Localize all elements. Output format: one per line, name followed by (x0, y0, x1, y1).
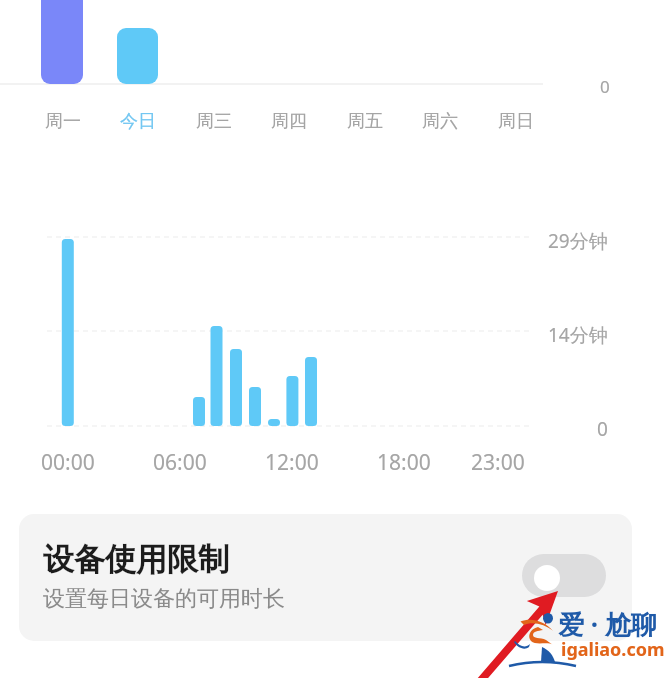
button[interactable]: 周日 (494, 106, 538, 136)
button[interactable]: 周四 (267, 106, 311, 136)
staticText: 设置每日设备的可用时长 (43, 585, 285, 613)
button[interactable]: 周一 (41, 106, 85, 136)
staticText: 14分钟 (548, 322, 608, 348)
button[interactable]: 今日 (116, 106, 160, 136)
staticText: igaliao.com (561, 637, 665, 662)
staticText: 29分钟 (548, 228, 608, 254)
staticText: 00:00 (41, 448, 95, 477)
staticText: 周五 (347, 110, 383, 133)
staticText: 爱 · 尬聊 (558, 606, 657, 642)
staticText: 设备使用限制 (43, 540, 229, 579)
staticText: 06:00 (153, 448, 207, 477)
button[interactable]: 周三 (192, 106, 236, 136)
button[interactable]: 周五 (343, 106, 387, 136)
staticText: 周四 (271, 110, 307, 133)
staticText: 23:00 (471, 448, 525, 477)
staticText: 周六 (422, 110, 458, 133)
button[interactable]: 设备使用限制 (19, 514, 632, 641)
staticText: 0 (600, 75, 610, 98)
staticText: 周日 (498, 110, 534, 133)
button[interactable]: 设备使用限制开关 (522, 554, 606, 597)
staticText: 周三 (196, 110, 232, 133)
staticText: 周一 (45, 110, 81, 133)
button[interactable]: 周六 (418, 106, 462, 136)
staticText: 今日 (120, 110, 156, 133)
staticText: 0 (597, 416, 608, 442)
staticText: 12:00 (265, 448, 319, 477)
staticText: 18:00 (377, 448, 431, 477)
